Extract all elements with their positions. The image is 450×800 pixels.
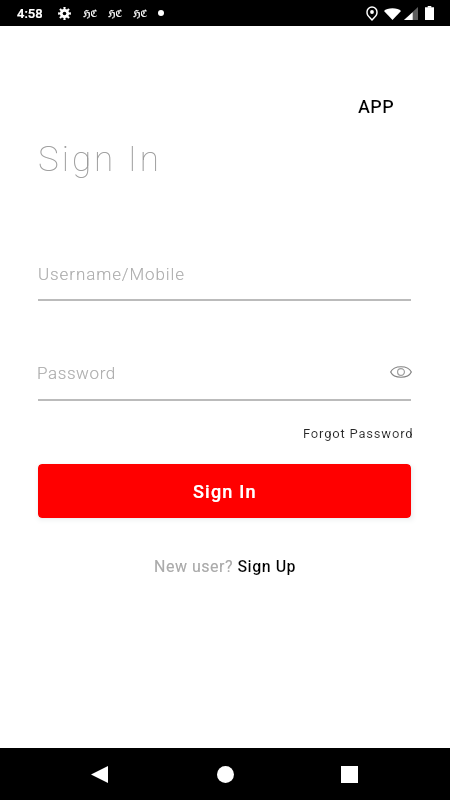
staticText: Sign In	[38, 139, 162, 180]
button[interactable]: Sign In	[38, 464, 411, 518]
staticText: ℌℭ	[108, 6, 123, 20]
staticText: APP	[358, 96, 395, 117]
staticText: ℌℭ	[133, 6, 148, 20]
button[interactable]: Recent apps	[324, 748, 374, 800]
staticText: Sign In	[193, 481, 257, 502]
button[interactable]: APP	[358, 96, 395, 117]
button[interactable]: Show password	[386, 358, 415, 385]
staticText: 4:58	[17, 6, 43, 21]
button[interactable]: Home	[200, 748, 250, 800]
staticText: Password	[37, 363, 116, 383]
button[interactable]: New user? Sign Up	[154, 557, 297, 576]
button[interactable]: Forgot Password	[303, 426, 414, 441]
staticText: Username/Mobile	[38, 264, 185, 284]
button[interactable]: Back	[74, 748, 124, 800]
staticText: ℌℭ	[83, 6, 98, 20]
